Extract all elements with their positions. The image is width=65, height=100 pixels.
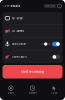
button[interactable]: Free trial bbox=[44, 4, 56, 8]
button[interactable]: Turn on bbox=[52, 55, 60, 59]
button[interactable]: Cursor bbox=[43, 80, 65, 100]
staticText: Start recording bbox=[21, 70, 44, 73]
button[interactable]: Help bbox=[56, 3, 62, 9]
button[interactable]: Start recording bbox=[2, 65, 62, 78]
button[interactable]: Full screen bbox=[2, 12, 62, 24]
staticText: System audio bbox=[11, 55, 27, 58]
button[interactable]: No camera bbox=[2, 25, 62, 37]
staticText: Videos bbox=[8, 92, 14, 94]
staticText: Screen bbox=[2, 4, 9, 8]
staticText: No camera bbox=[11, 30, 23, 33]
button[interactable]: Schedule bbox=[22, 80, 43, 100]
button[interactable]: Input level bbox=[41, 42, 51, 46]
button[interactable]: Turn off bbox=[52, 42, 60, 46]
staticText: Microphone bbox=[11, 42, 25, 46]
staticText: Schedule bbox=[28, 92, 36, 94]
staticText: ? bbox=[59, 5, 60, 7]
button[interactable]: Videos bbox=[0, 80, 22, 100]
staticText: Cursor bbox=[51, 92, 58, 94]
staticText: Studio bbox=[9, 4, 20, 8]
staticText: Free trial bbox=[45, 5, 55, 7]
staticText: Full screen bbox=[11, 17, 22, 20]
